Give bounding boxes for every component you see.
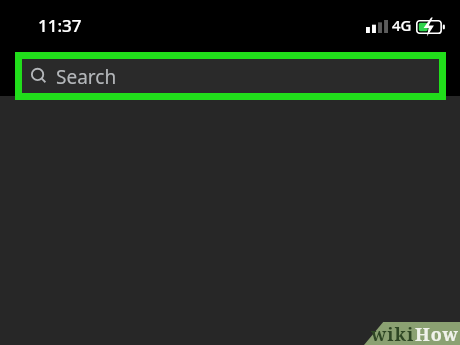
staticText: How [415,322,459,345]
staticText: Search [56,64,117,90]
staticText: 4G [392,15,412,35]
button[interactable]: Search [15,52,446,100]
other: Search [31,68,47,84]
staticText: wiki [371,322,415,345]
staticText: 11:37 [38,14,82,37]
